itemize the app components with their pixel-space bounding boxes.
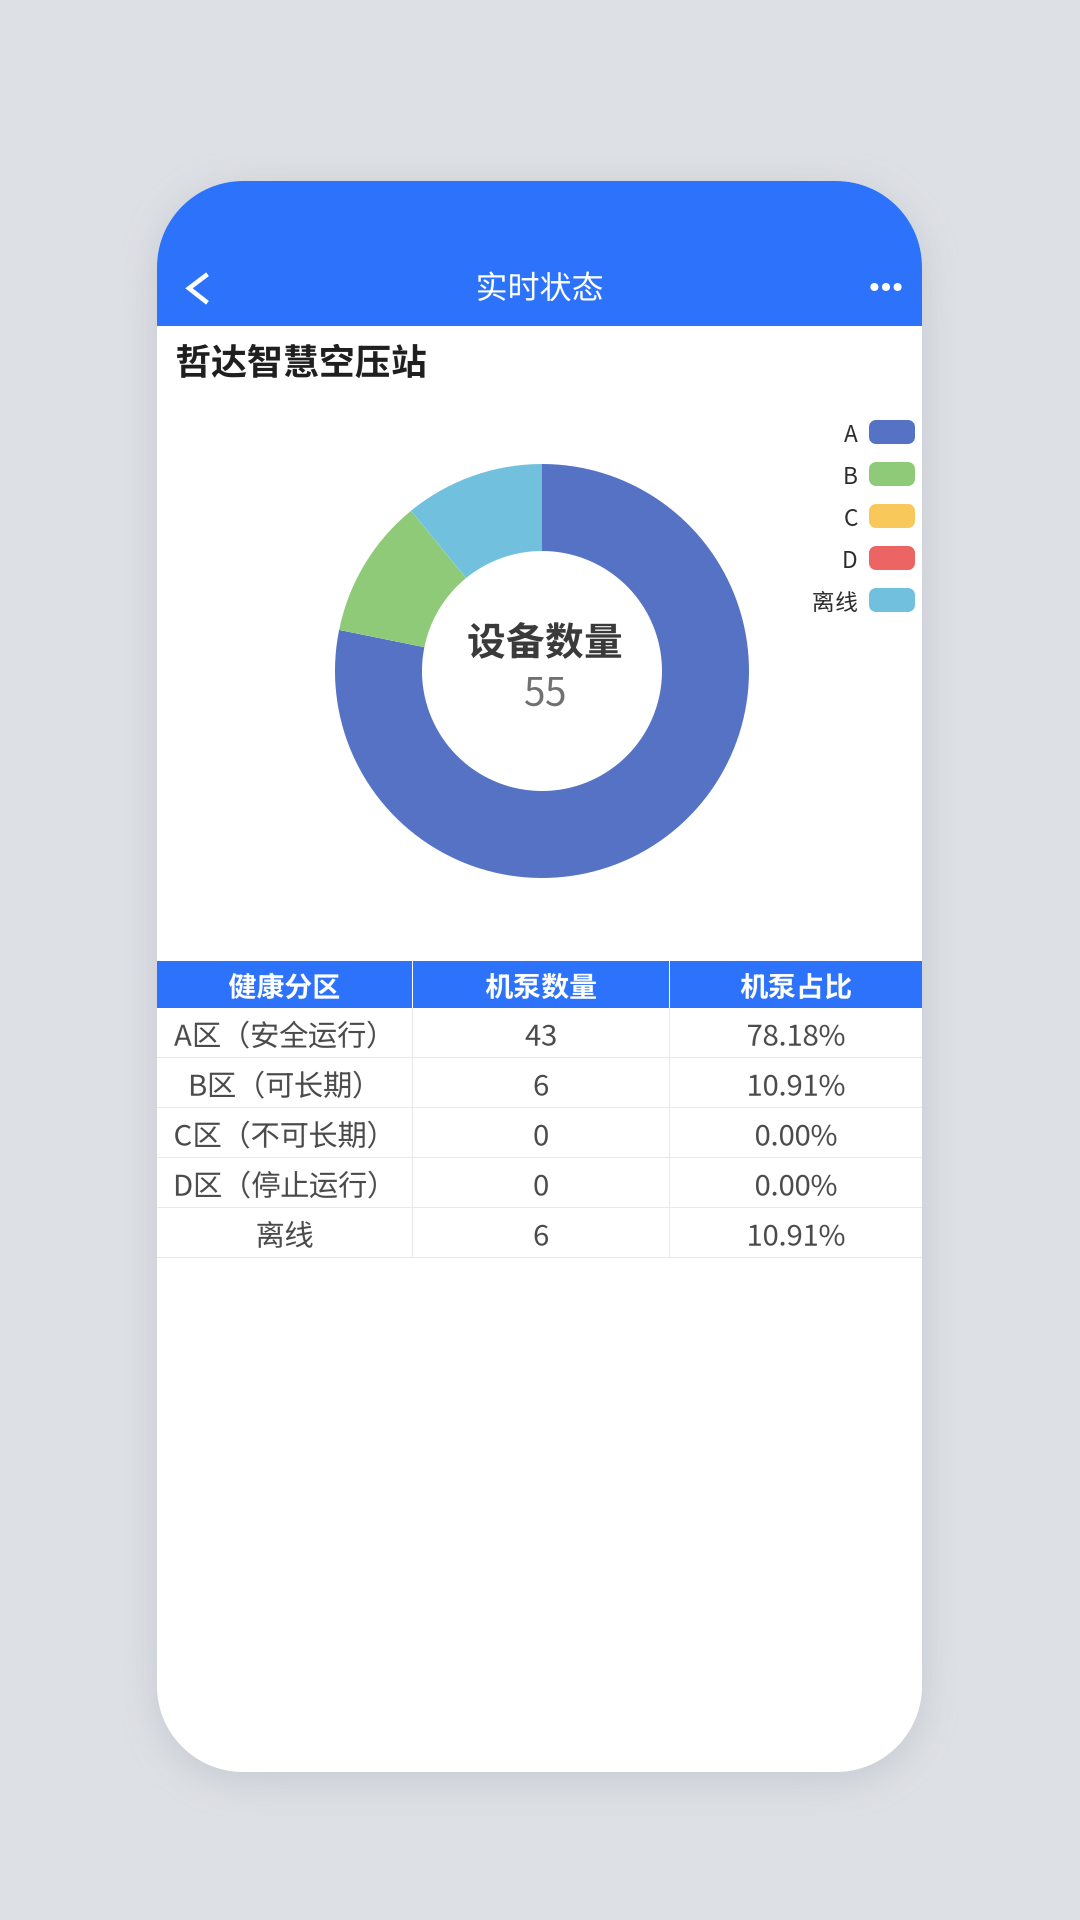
button[interactable]: C区（不可长期） [157,1108,922,1158]
button[interactable]: More options [850,251,922,323]
staticText: 78.18% [746,1012,845,1054]
staticText: 实时状态 [475,261,603,308]
staticText: 55 [524,661,566,717]
staticText: A区（安全运行） [174,1012,395,1054]
staticText: A [844,416,858,448]
staticText: 0 [533,1162,549,1204]
staticText: 0 [533,1112,549,1154]
staticText: 设备数量 [467,610,623,666]
staticText: B区（可长期） [188,1062,381,1104]
staticText: B [843,458,858,490]
button[interactable]: A区（安全运行） [157,1008,922,1058]
staticText: C区（不可长期） [173,1112,395,1154]
staticText: C [844,500,858,532]
button[interactable]: D区（停止运行） [157,1158,922,1208]
staticText: 机泵占比 [740,964,852,1005]
button[interactable]: 离线 [157,1208,922,1258]
staticText: 离线 [812,584,858,616]
staticText: 健康分区 [228,964,340,1005]
button[interactable]: B区（可长期） [157,1058,922,1108]
staticText: 0.00% [754,1112,837,1154]
staticText: 离线 [255,1212,313,1254]
staticText: 43 [525,1012,557,1054]
staticText: 6 [533,1212,549,1254]
staticText: D区（停止运行） [173,1162,396,1204]
staticText: 10.91% [746,1062,845,1104]
staticText: 0.00% [754,1162,837,1204]
button[interactable]: Back [157,251,229,323]
staticText: 6 [533,1062,549,1104]
staticText: 机泵数量 [485,964,597,1005]
staticText: 哲达智慧空压站 [175,333,427,385]
staticText: 10.91% [746,1212,845,1254]
staticText: D [842,542,858,574]
